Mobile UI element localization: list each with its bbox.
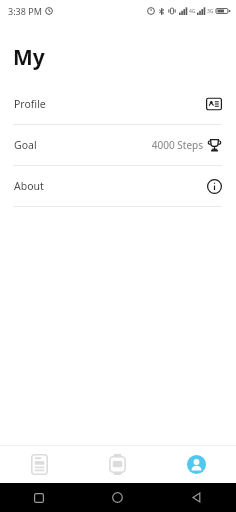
staticText: Profile	[14, 97, 46, 111]
button[interactable]: Goal	[0, 125, 236, 165]
button[interactable]: Recents	[0, 483, 78, 512]
staticText: My	[13, 43, 45, 72]
other: Goal	[204, 135, 224, 155]
staticText: 3:38 PM	[8, 5, 42, 17]
button[interactable]: Device	[78, 446, 157, 483]
staticText: Goal	[14, 138, 37, 152]
other: Profile	[204, 94, 224, 114]
button[interactable]: My profile	[157, 446, 236, 483]
button[interactable]: Records	[0, 446, 78, 483]
button[interactable]: Home	[78, 483, 157, 512]
button[interactable]: Profile	[0, 84, 236, 124]
other: About	[204, 176, 224, 196]
staticText: 3G	[207, 8, 214, 15]
button[interactable]: About	[0, 166, 236, 206]
staticText: 4000 Steps	[151, 138, 203, 152]
staticText: 4G	[189, 8, 196, 15]
staticText: About	[14, 179, 44, 193]
button[interactable]: Back	[157, 483, 236, 512]
